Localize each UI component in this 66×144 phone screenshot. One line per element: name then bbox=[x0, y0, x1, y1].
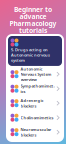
button[interactable]: Cholinomimetics bbox=[8, 111, 62, 124]
button[interactable]: Adrenergic blockers bbox=[8, 97, 62, 109]
button[interactable]: Neuromuscular blockers bbox=[8, 126, 62, 138]
staticText: Neuromuscular blockers bbox=[20, 127, 51, 137]
staticText: Adrenergic blockers bbox=[20, 98, 43, 108]
staticText: Autonomic Nervous System overview bbox=[20, 66, 51, 82]
button[interactable]: 5. Drugs acting on Autonomic nervous sys… bbox=[8, 36, 62, 66]
staticText: Cholinomimetics bbox=[20, 115, 53, 120]
staticText: Sympathomimetics bbox=[20, 83, 54, 94]
staticText: Beginner to bbox=[14, 5, 52, 14]
staticText: tutorials bbox=[19, 26, 47, 35]
staticText: Pharmacology bbox=[9, 19, 56, 28]
button[interactable]: Sympathomimetics bbox=[8, 82, 62, 95]
staticText: 5. Drugs acting on Autonomic nervous sys… bbox=[11, 47, 50, 63]
button[interactable]: Autonomic Nervous System overview bbox=[8, 68, 62, 80]
staticText: advance bbox=[19, 12, 46, 21]
